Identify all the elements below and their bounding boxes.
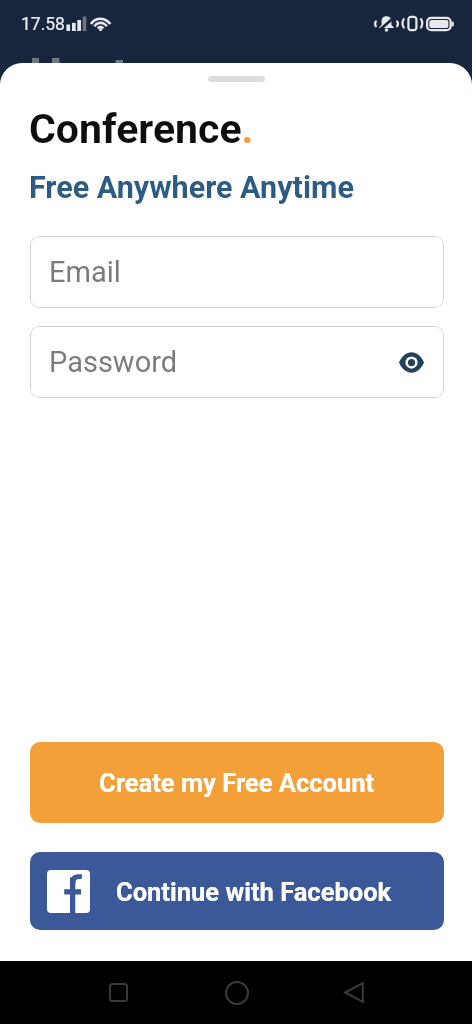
staticText: 17.58	[21, 14, 65, 35]
staticText: Conference.	[29, 105, 254, 153]
staticText: Continue with Facebook	[116, 877, 392, 907]
button[interactable]: Recent apps	[94, 968, 143, 1017]
button[interactable]: Home	[212, 968, 261, 1017]
button[interactable]: Back	[329, 968, 378, 1017]
button[interactable]: Email	[30, 236, 444, 308]
button[interactable]: Create my Free Account	[30, 742, 444, 823]
staticText: Password	[49, 345, 178, 379]
staticText: Create my Free Account	[99, 768, 375, 798]
button[interactable]: Password	[30, 326, 444, 398]
button[interactable]: Continue with Facebook	[30, 852, 444, 930]
staticText: Free Anywhere Anytime	[29, 170, 354, 206]
button[interactable]: Show password	[391, 342, 431, 382]
staticText: Email	[49, 255, 121, 289]
